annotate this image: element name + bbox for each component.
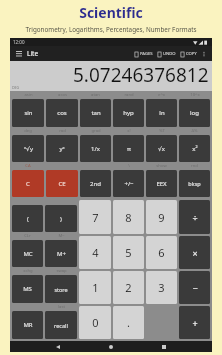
staticText: store [54, 286, 68, 293]
button[interactable]: × [179, 236, 210, 269]
staticText: M+ [57, 250, 66, 258]
button[interactable]: 1/x [80, 135, 111, 162]
button[interactable]: ln [146, 99, 177, 127]
button[interactable]: +/− [113, 170, 144, 197]
staticText: ÷ [192, 211, 198, 223]
staticText: 6 [158, 245, 165, 260]
staticText: ) [60, 215, 62, 223]
button[interactable]: sin [12, 99, 44, 127]
button[interactable]: 2 [113, 271, 144, 304]
staticText: CE [58, 180, 66, 188]
staticText: cos [57, 109, 67, 117]
button[interactable]: 1 [79, 271, 111, 304]
staticText: %T [159, 128, 165, 134]
button[interactable]: hyp [113, 99, 144, 127]
staticText: acos [58, 92, 67, 98]
staticText: 1 [92, 280, 99, 295]
button[interactable]: ) [45, 205, 77, 232]
button[interactable]: ( [12, 205, 43, 232]
button[interactable]: log [179, 99, 210, 127]
button[interactable]: − [179, 271, 210, 304]
staticText: Scientific [79, 3, 143, 22]
button[interactable]: More options [199, 49, 208, 58]
staticText: PAGES [140, 51, 153, 57]
button[interactable]: 2nd [80, 170, 111, 197]
staticText: xchg [23, 268, 33, 274]
staticText: bksp [188, 180, 201, 187]
button[interactable]: store [45, 275, 77, 303]
button[interactable]: Back [53, 342, 63, 352]
button[interactable]: ˣ√y [12, 135, 44, 162]
button[interactable]: MS [12, 275, 43, 303]
button[interactable]: CE [46, 170, 78, 197]
staticText: 2 [125, 280, 132, 295]
button[interactable]: MC [12, 240, 43, 267]
staticText: M− [58, 233, 65, 239]
staticText: COPY [186, 51, 197, 57]
staticText: atan [91, 92, 100, 98]
staticText: √x [158, 145, 165, 153]
button[interactable]: PAGES [134, 51, 153, 57]
button[interactable]: C [12, 170, 44, 197]
button[interactable]: . [113, 306, 144, 339]
button[interactable]: 3 [146, 271, 177, 304]
button[interactable]: recall [45, 311, 77, 339]
button[interactable]: EEX [146, 170, 177, 197]
button[interactable]: Home [106, 342, 116, 352]
staticText: grad [91, 128, 101, 134]
button[interactable]: π [113, 135, 144, 162]
button[interactable]: 6 [146, 236, 177, 269]
button[interactable]: √x [146, 135, 177, 162]
button[interactable]: MR [12, 311, 43, 339]
staticText: 3 [158, 280, 165, 295]
staticText: + [192, 317, 198, 329]
staticText: 5 [125, 245, 132, 260]
button[interactable]: ÷ [179, 200, 210, 234]
staticText: UNDO [163, 51, 176, 57]
staticText: \ [128, 163, 130, 169]
button[interactable]: 8 [113, 200, 144, 234]
button[interactable]: 0 [79, 306, 111, 339]
staticText: deg [24, 128, 32, 134]
button[interactable]: yˣ [46, 135, 78, 162]
staticText: sin [24, 109, 33, 117]
staticText: yˣ [59, 145, 65, 153]
staticText: 8 [125, 210, 132, 225]
staticText: 12:00 [13, 39, 25, 45]
button[interactable]: Menu [14, 49, 23, 58]
staticText: rad [59, 128, 66, 134]
staticText: ( [27, 215, 29, 223]
button[interactable]: M+ [45, 240, 77, 267]
button[interactable]: x² [179, 135, 210, 162]
staticText: DEG [12, 85, 20, 90]
staticText: ln [159, 109, 165, 117]
button[interactable]: bksp [179, 170, 210, 197]
button[interactable]: 5 [113, 236, 144, 269]
staticText: Δ% [191, 128, 198, 134]
button[interactable]: UNDO [157, 51, 176, 57]
button[interactable]: Recents [159, 342, 169, 352]
button[interactable]: cos [46, 99, 78, 127]
staticText: MC [23, 250, 33, 258]
staticText: rnd [191, 163, 198, 169]
staticText: +/− [124, 180, 134, 188]
staticText: 5.07246376812 [73, 62, 209, 88]
staticText: hyp [123, 109, 134, 117]
button[interactable]: COPY [180, 51, 197, 57]
staticText: x! [127, 128, 131, 134]
button[interactable]: tan [80, 99, 111, 127]
staticText: MS [23, 285, 32, 293]
staticText: 7 [92, 210, 99, 225]
staticText: Lite [27, 49, 39, 58]
button[interactable]: 9 [146, 200, 177, 234]
staticText: CLr [24, 233, 31, 239]
staticText: show [156, 163, 167, 169]
staticText: . [127, 315, 130, 330]
button[interactable]: 4 [79, 236, 111, 269]
button[interactable]: 7 [79, 200, 111, 234]
staticText: last [58, 304, 65, 310]
button[interactable]: + [179, 306, 210, 339]
staticText: − [192, 282, 198, 294]
staticText: × [192, 247, 198, 259]
staticText: C [26, 180, 30, 188]
